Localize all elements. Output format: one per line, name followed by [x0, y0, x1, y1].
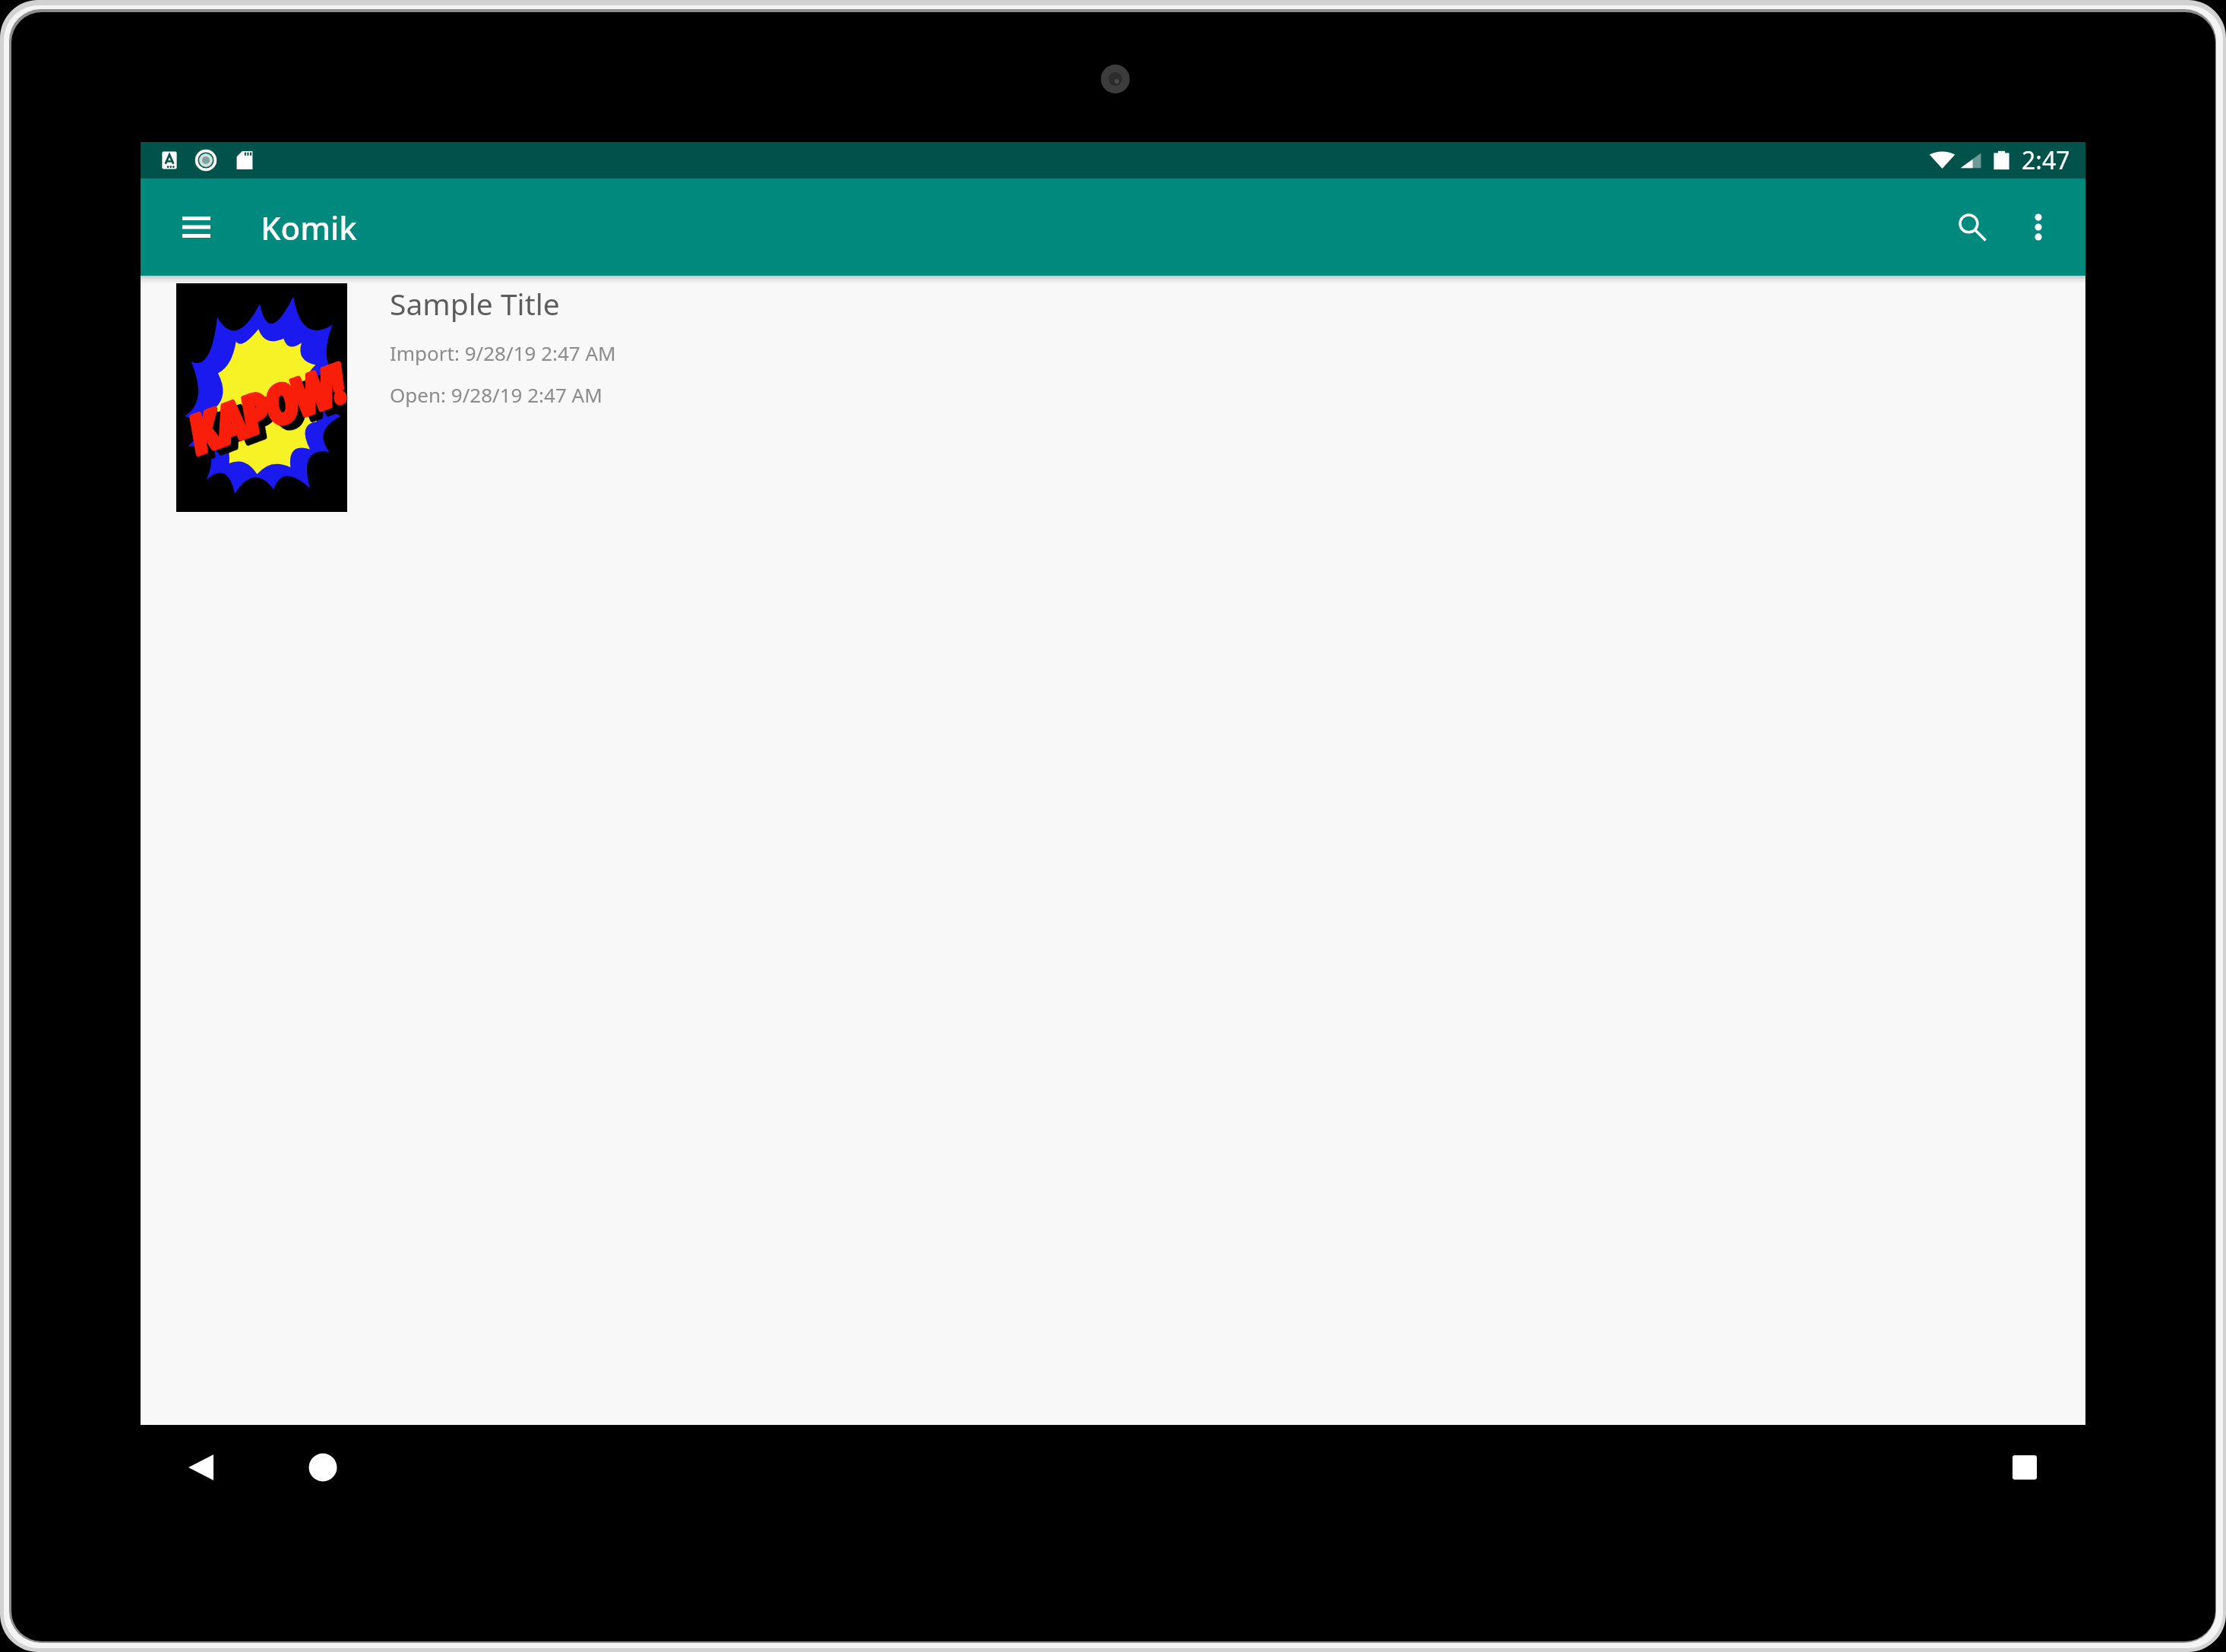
button[interactable]: Home: [262, 1425, 384, 1510]
staticText: Import: 9/28/19 2:47 AM: [390, 340, 616, 366]
staticText: Sample Title: [390, 283, 560, 324]
button[interactable]: More options: [1996, 185, 2081, 270]
button[interactable]: Recent apps: [1964, 1425, 2085, 1510]
button[interactable]: Back: [141, 1425, 262, 1510]
button[interactable]: Open navigation drawer: [157, 188, 235, 266]
staticText: 2:47: [2022, 144, 2070, 177]
button[interactable]: Sample Title: [141, 276, 2085, 519]
button[interactable]: Search: [1949, 185, 1996, 270]
staticText: Komik: [261, 206, 357, 249]
staticText: Open: 9/28/19 2:47 AM: [390, 381, 602, 408]
